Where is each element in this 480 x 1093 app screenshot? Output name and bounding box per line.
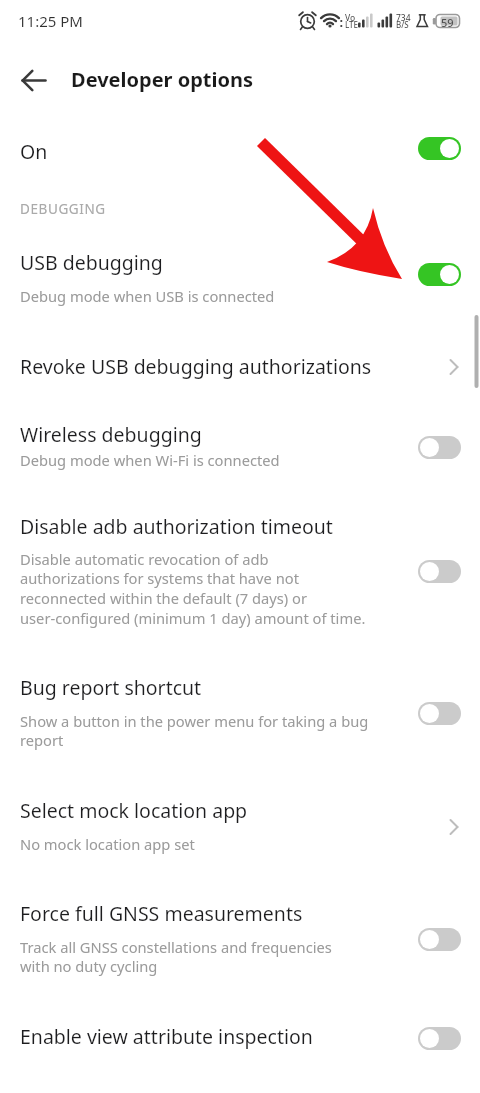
button[interactable] [0, 335, 480, 399]
staticText: DEBUGGING [20, 200, 106, 218]
staticText: LTE [345, 19, 359, 30]
staticText: Select mock location app [20, 797, 248, 824]
button[interactable] [0, 665, 480, 762]
button[interactable] [0, 412, 480, 482]
staticText: Enable view attribute inspection [20, 1023, 313, 1050]
button[interactable] [22, 70, 47, 91]
staticText: Disable automatic revocation of adb auth… [20, 549, 366, 629]
staticText: 59 [441, 15, 454, 30]
button[interactable] [418, 436, 461, 459]
staticText: Force full GNSS measurements [20, 900, 303, 927]
button[interactable] [418, 1027, 461, 1050]
staticText: 11:25 PM [18, 11, 83, 31]
button[interactable] [418, 928, 461, 951]
button[interactable] [418, 137, 461, 160]
button[interactable] [418, 263, 461, 286]
button[interactable] [0, 788, 480, 866]
staticText: No mock location app set [20, 834, 195, 854]
staticText: Bug report shortcut [20, 674, 202, 701]
staticText: USB debugging [20, 249, 163, 276]
staticText: Disable adb authorization timeout [20, 513, 333, 540]
button[interactable] [0, 505, 480, 640]
button[interactable] [0, 122, 480, 176]
staticText: Debug mode when Wi-Fi is connected [20, 450, 280, 470]
staticText: Track all GNSS constellations and freque… [20, 937, 332, 977]
staticText: Show a button in the power menu for taki… [20, 711, 369, 751]
button[interactable] [0, 238, 480, 316]
button[interactable] [0, 1012, 480, 1072]
staticText: Vo [345, 12, 356, 24]
button[interactable] [418, 560, 461, 583]
staticText: 734 [396, 12, 411, 24]
staticText: On [20, 138, 48, 165]
staticText: B/S [396, 19, 409, 30]
staticText: Developer options [71, 66, 254, 93]
staticText: Debug mode when USB is connected [20, 286, 275, 306]
button[interactable] [0, 890, 480, 987]
staticText: Wireless debugging [20, 421, 202, 448]
staticText: Revoke USB debugging authorizations [20, 353, 372, 380]
button[interactable] [418, 702, 461, 725]
